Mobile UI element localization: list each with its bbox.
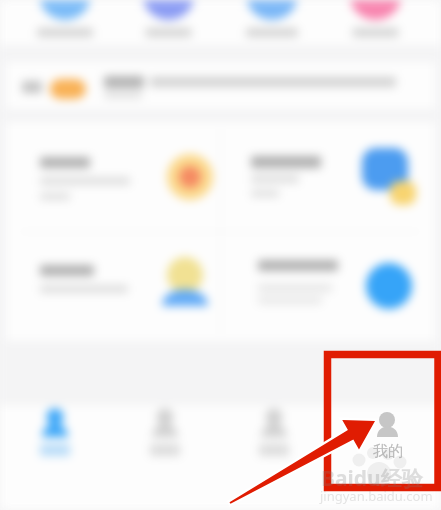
button[interactable]: 分类 bbox=[110, 404, 220, 510]
button[interactable]: 活动横幅 bbox=[7, 62, 434, 110]
button[interactable]: 快捷入口 bbox=[336, 0, 416, 38]
button[interactable]: 首页 bbox=[0, 404, 110, 510]
staticText: 我的 bbox=[373, 442, 403, 461]
button[interactable]: 快捷入口 bbox=[232, 0, 312, 38]
staticText: jingyan.baidu.com bbox=[320, 487, 433, 505]
button[interactable]: 我的 bbox=[340, 404, 436, 466]
button[interactable]: 服务卡片 bbox=[221, 122, 435, 232]
button[interactable]: 快捷入口 bbox=[25, 0, 105, 38]
staticText: Baidu经验 bbox=[321, 464, 423, 493]
button[interactable]: 服务卡片 bbox=[7, 122, 221, 232]
button[interactable]: 购物车 bbox=[221, 404, 331, 510]
button[interactable]: 快捷入口 bbox=[129, 0, 209, 38]
button[interactable]: 服务卡片 bbox=[221, 232, 435, 342]
button[interactable]: 服务卡片 bbox=[7, 232, 221, 342]
